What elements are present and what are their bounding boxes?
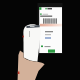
button[interactable]: Product photo	[0, 0, 80, 80]
